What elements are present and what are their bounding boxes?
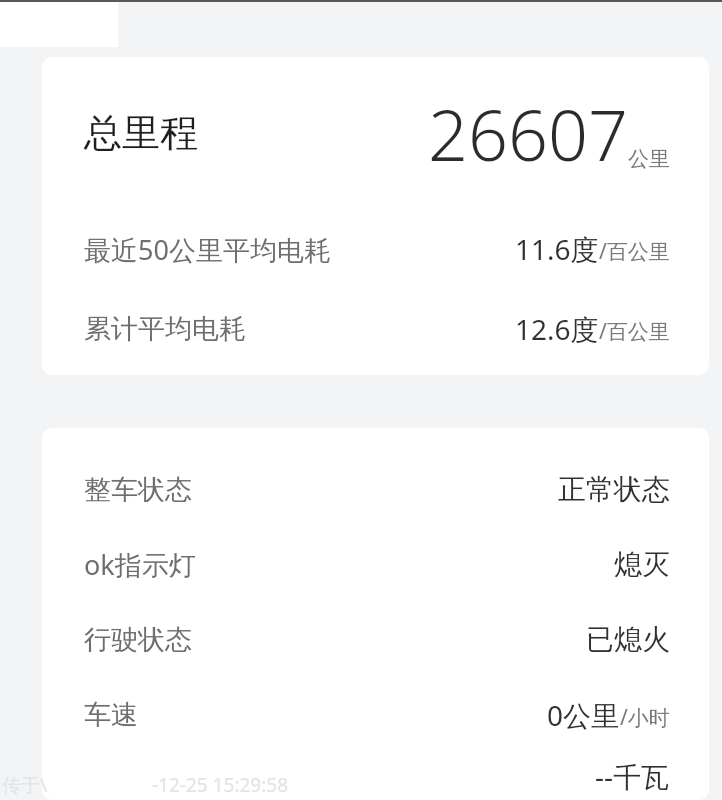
staticText: 12.6度: [515, 310, 599, 348]
button[interactable]: 累计平均电耗: [42, 289, 709, 369]
staticText: 最近50公里平均电耗: [84, 231, 331, 268]
button[interactable]: 行驶状态: [42, 602, 709, 677]
staticText: 0公里: [547, 696, 620, 734]
staticText: 传于\: [2, 772, 48, 798]
button[interactable]: Share watermark: [2, 772, 48, 798]
staticText: 正常状态: [558, 472, 670, 507]
staticText: --千瓦: [595, 757, 670, 795]
staticText: /百公里: [599, 317, 670, 346]
button[interactable]: 总里程: [42, 57, 709, 209]
button[interactable]: 整车状态: [42, 452, 709, 527]
staticText: 已熄火: [586, 622, 670, 657]
button[interactable]: 车速: [42, 677, 709, 752]
staticText: 26607: [428, 86, 628, 181]
staticText: 熄灭: [614, 547, 670, 582]
staticText: 整车状态: [84, 473, 192, 507]
staticText: /百公里: [599, 237, 670, 266]
staticText: /小时: [620, 703, 670, 732]
staticText: 总里程: [84, 109, 198, 157]
staticText: 11.6度: [515, 230, 599, 268]
button[interactable]: 最近50公里平均电耗: [42, 209, 709, 289]
staticText: -12-25 15:29:58: [152, 772, 289, 798]
staticText: 公里: [628, 146, 670, 172]
button[interactable]: --千瓦: [42, 752, 709, 800]
staticText: 行驶状态: [84, 623, 192, 657]
button[interactable]: ok指示灯: [42, 527, 709, 602]
staticText: ok指示灯: [84, 546, 196, 583]
staticText: 累计平均电耗: [84, 312, 246, 346]
staticText: 车速: [84, 698, 138, 732]
